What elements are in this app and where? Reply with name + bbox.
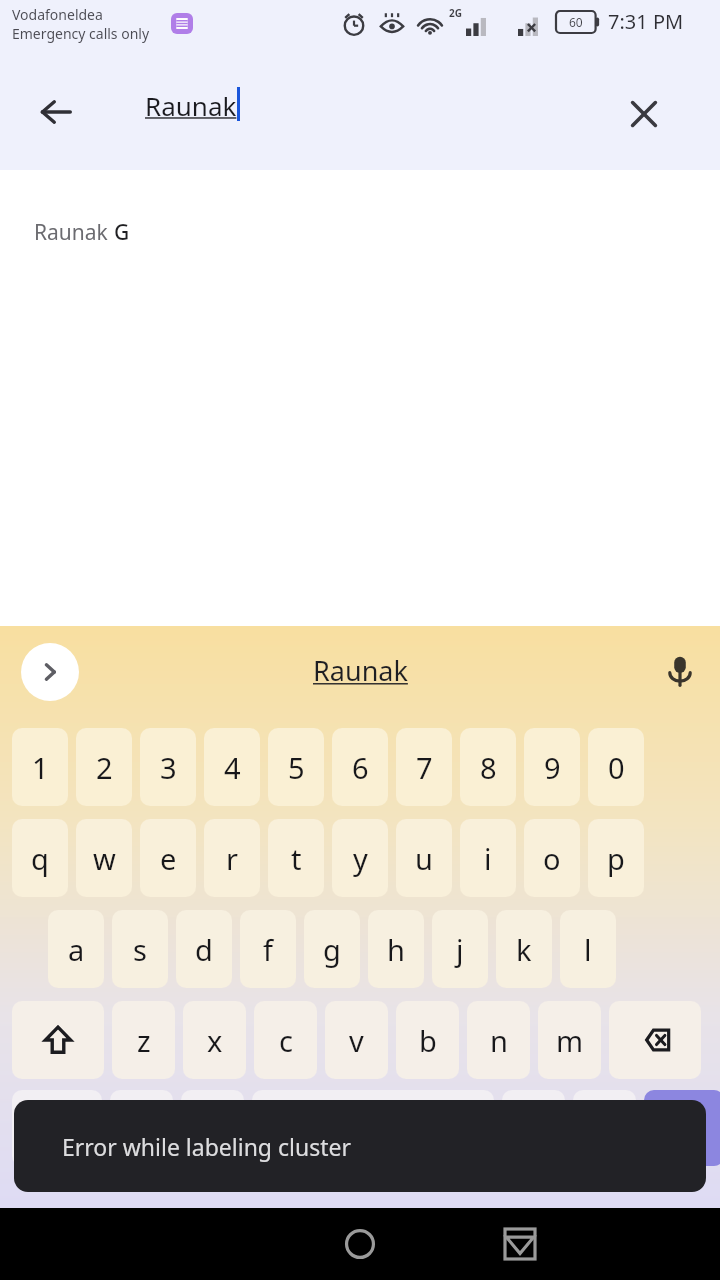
button[interactable]: t	[268, 819, 324, 897]
staticText: z	[137, 1021, 151, 1060]
staticText: Emergency calls only	[12, 24, 150, 43]
staticText: a	[68, 930, 85, 969]
staticText: l	[584, 930, 592, 969]
staticText: c	[279, 1021, 293, 1060]
button[interactable]: 6	[332, 728, 388, 806]
staticText: 60	[569, 14, 583, 30]
staticText: 5	[288, 748, 305, 787]
button[interactable]: Raunak	[34, 218, 130, 247]
staticText: Raunak	[34, 218, 114, 247]
staticText: m	[556, 1021, 584, 1060]
staticText: f	[263, 930, 273, 969]
staticText: 1	[32, 748, 49, 787]
button[interactable]: r	[204, 819, 260, 897]
button[interactable]: 0	[588, 728, 644, 806]
staticText: o	[543, 839, 561, 878]
staticText: Raunak	[145, 88, 237, 123]
staticText: y	[353, 839, 368, 878]
button[interactable]: a	[48, 910, 104, 988]
button[interactable]: Key	[573, 1090, 636, 1166]
staticText: r	[226, 839, 238, 878]
staticText: Error while labeling cluster	[62, 1131, 351, 1162]
staticText: Vodafoneldea	[12, 5, 103, 24]
button[interactable]: n	[467, 1001, 530, 1079]
staticText: 7:31 PM	[608, 8, 684, 35]
button[interactable]: c	[254, 1001, 317, 1079]
button[interactable]: y	[332, 819, 388, 897]
button[interactable]: Space	[252, 1090, 494, 1166]
button[interactable]: Voice input	[652, 643, 708, 699]
button[interactable]: b	[396, 1001, 459, 1079]
staticText: d	[195, 930, 213, 969]
staticText: e	[160, 839, 177, 878]
button[interactable]: e	[140, 819, 196, 897]
button[interactable]: 1	[12, 728, 68, 806]
button[interactable]: Key	[502, 1090, 565, 1166]
staticText: q	[31, 839, 49, 878]
button[interactable]: Clear	[612, 82, 676, 146]
button[interactable]: Key	[110, 1090, 173, 1166]
button[interactable]: Back	[160, 1208, 720, 1280]
staticText: 0	[608, 748, 625, 787]
staticText: s	[133, 930, 147, 969]
staticText: x	[207, 1021, 223, 1060]
button[interactable]: 7	[396, 728, 452, 806]
staticText: 7	[416, 748, 433, 787]
staticText: 3	[160, 748, 177, 787]
button[interactable]: o	[524, 819, 580, 897]
staticText: t	[291, 839, 302, 878]
button[interactable]: Back	[22, 78, 90, 146]
button[interactable]: 5	[268, 728, 324, 806]
button[interactable]: Home	[320, 1208, 400, 1280]
staticText: p	[607, 839, 625, 878]
button[interactable]: m	[538, 1001, 601, 1079]
button[interactable]: k	[496, 910, 552, 988]
button[interactable]: 9	[524, 728, 580, 806]
button[interactable]: 8	[460, 728, 516, 806]
button[interactable]: q	[12, 819, 68, 897]
button[interactable]: Recents	[480, 1208, 560, 1280]
button[interactable]: s	[112, 910, 168, 988]
staticText: b	[419, 1021, 437, 1060]
button[interactable]: h	[368, 910, 424, 988]
button[interactable]: Shift	[12, 1001, 104, 1079]
button[interactable]: Backspace	[609, 1001, 701, 1079]
staticText: g	[323, 930, 341, 969]
staticText: u	[415, 839, 433, 878]
staticText: 9	[544, 748, 561, 787]
staticText: G	[114, 218, 130, 247]
staticText: Raunak	[313, 652, 408, 689]
button[interactable]: l	[560, 910, 616, 988]
button[interactable]: Raunak	[145, 88, 240, 123]
staticText: w	[93, 839, 116, 878]
staticText: k	[516, 930, 532, 969]
button[interactable]: u	[396, 819, 452, 897]
staticText: n	[490, 1021, 508, 1060]
button[interactable]: Expand	[21, 643, 79, 701]
button[interactable]: z	[112, 1001, 175, 1079]
button[interactable]: w	[76, 819, 132, 897]
button[interactable]: d	[176, 910, 232, 988]
button[interactable]: v	[325, 1001, 388, 1079]
staticText: h	[387, 930, 405, 969]
button[interactable]: p	[588, 819, 644, 897]
button[interactable]: f	[240, 910, 296, 988]
button[interactable]: Enter	[644, 1090, 720, 1166]
staticText: v	[349, 1021, 364, 1060]
staticText: j	[456, 930, 464, 969]
button[interactable]: g	[304, 910, 360, 988]
button[interactable]: Error while labeling cluster	[14, 1100, 706, 1192]
button[interactable]: Key	[12, 1090, 102, 1166]
button[interactable]: x	[183, 1001, 246, 1079]
button[interactable]: 2	[76, 728, 132, 806]
button[interactable]: i	[460, 819, 516, 897]
staticText: 6	[352, 748, 369, 787]
button[interactable]: Raunak	[313, 652, 408, 689]
button[interactable]: 4	[204, 728, 260, 806]
button[interactable]: 3	[140, 728, 196, 806]
staticText: 8	[480, 748, 497, 787]
staticText: 2	[96, 748, 113, 787]
button[interactable]: Key	[181, 1090, 244, 1166]
staticText: 2G	[449, 6, 462, 20]
button[interactable]: j	[432, 910, 488, 988]
